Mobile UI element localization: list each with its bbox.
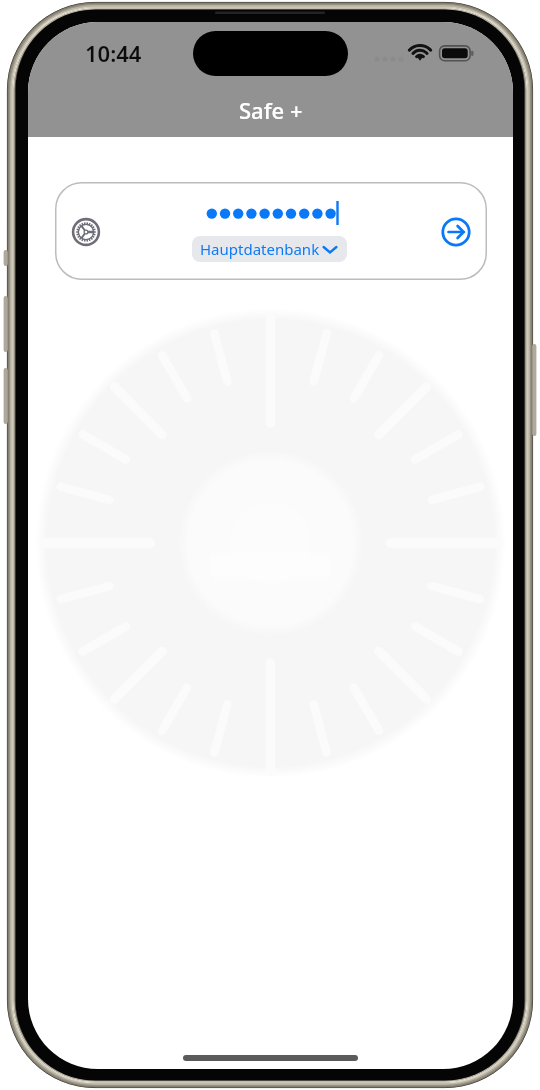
button[interactable]: Hauptdatenbank bbox=[192, 236, 347, 262]
staticText: 10:44 bbox=[85, 38, 142, 68]
staticText: Safe + bbox=[239, 95, 303, 125]
button[interactable]: Master password bbox=[141, 190, 411, 232]
button[interactable]: Settings bbox=[64, 210, 108, 254]
staticText: Hauptdatenbank bbox=[200, 239, 320, 259]
button[interactable]: Unlock database bbox=[434, 210, 478, 254]
